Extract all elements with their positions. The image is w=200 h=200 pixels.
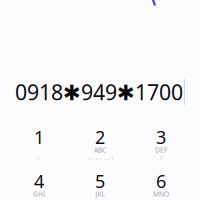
- button[interactable]: 3: [130, 128, 191, 162]
- staticText: ا ب ت ث: [87, 154, 113, 162]
- staticText: JKL: [95, 189, 104, 199]
- button[interactable]: 4: [8, 172, 69, 200]
- staticText: اا: [159, 154, 163, 162]
- staticText: 2: [95, 125, 105, 149]
- staticText: 1: [34, 125, 44, 149]
- staticText: ABC: [94, 145, 106, 155]
- staticText: 4: [34, 169, 44, 193]
- staticText: 0918✱949✱1700: [15, 77, 183, 107]
- button[interactable]: 6: [130, 172, 191, 200]
- staticText: DEF: [155, 145, 167, 155]
- staticText: 3: [156, 125, 166, 149]
- button[interactable]: 1: [8, 128, 69, 162]
- button[interactable]: 5: [69, 172, 130, 200]
- staticText: GHI: [33, 189, 45, 199]
- staticText: 5: [95, 169, 105, 193]
- staticText: MNO: [153, 189, 169, 199]
- staticText: ∞: [36, 154, 42, 162]
- button[interactable]: 2: [69, 128, 130, 162]
- staticText: 6: [156, 169, 166, 193]
